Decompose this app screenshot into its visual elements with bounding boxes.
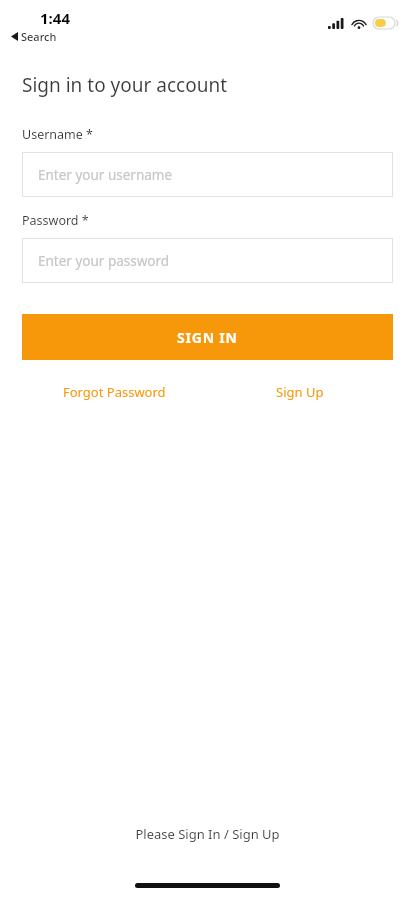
- staticText: Search: [21, 29, 57, 44]
- staticText: Please Sign In / Sign Up: [135, 825, 280, 843]
- staticText: SIGN IN: [177, 328, 238, 347]
- button[interactable]: SIGN IN: [22, 314, 393, 360]
- button[interactable]: Sign Up: [207, 383, 393, 401]
- staticText: Sign in to your account: [22, 72, 228, 98]
- button[interactable]: Enter your username: [22, 152, 393, 197]
- staticText: Password *: [22, 212, 89, 229]
- button[interactable]: Enter your password: [22, 238, 393, 283]
- staticText: Sign Up: [276, 383, 324, 401]
- staticText: Forgot Password: [63, 383, 166, 401]
- button[interactable]: Forgot Password: [22, 383, 207, 401]
- staticText: 1:44: [40, 8, 70, 28]
- button[interactable]: Back to Search: [11, 29, 57, 44]
- staticText: Username *: [22, 126, 93, 143]
- staticText: Enter your username: [38, 166, 173, 184]
- staticText: Enter your password: [38, 252, 170, 270]
